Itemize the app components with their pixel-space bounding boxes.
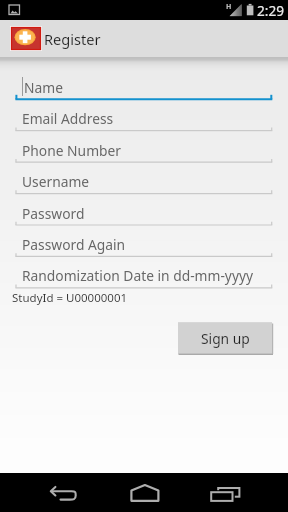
button[interactable]: Username [0,162,288,193]
button[interactable]: Name [0,68,288,99]
staticText: Randomization Date in dd-mm-yyyy [22,266,253,285]
staticText: Username [22,172,90,191]
button[interactable]: Phone Number [0,131,288,162]
staticText: Password [22,204,85,223]
staticText: 2:29 [257,1,284,20]
button[interactable]: Password Again [0,225,288,256]
staticText: Phone Number [22,141,121,160]
button[interactable]: Email Address [0,99,288,130]
button[interactable]: Recent apps [200,473,248,512]
staticText: Email Address [22,109,114,128]
button[interactable]: Home [120,473,168,512]
staticText: StudyId = U00000001 [12,290,128,306]
staticText: H [226,2,232,12]
staticText: Password Again [22,235,126,254]
button[interactable]: Sign up [178,322,272,354]
button[interactable]: Back [40,473,88,512]
button[interactable]: Randomization Date in dd-mm-yyyy [0,256,288,287]
staticText: Register [44,29,101,49]
staticText: Sign up [201,329,250,348]
button[interactable]: Password [0,194,288,225]
staticText: Name [24,78,63,97]
